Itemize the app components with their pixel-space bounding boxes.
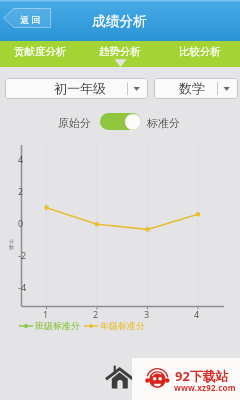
staticText: 4: [18, 153, 24, 165]
staticText: 2: [18, 185, 24, 197]
button[interactable]: 班级标准分: [19, 320, 80, 331]
staticText: 班级标准分: [35, 320, 80, 331]
staticText: 标准分: [147, 116, 180, 130]
staticText: 返 回: [20, 13, 41, 25]
staticText: 数: [9, 244, 14, 250]
staticText: 3: [144, 308, 150, 320]
button[interactable]: 初一年级: [5, 78, 148, 99]
button[interactable]: 贡献度分析: [0, 41, 80, 67]
staticText: 初一年级: [54, 80, 106, 96]
staticText: -4: [18, 281, 27, 293]
staticText: 原始分: [58, 116, 91, 130]
staticText: www.xz92.com: [174, 382, 236, 393]
button[interactable]: 原始分 标准分 切换: [100, 113, 141, 130]
staticText: 比较分析: [179, 45, 221, 58]
staticText: 数学: [179, 80, 205, 96]
button[interactable]: 年级标准分: [84, 320, 145, 331]
staticText: 4: [194, 308, 200, 320]
staticText: 成绩分析: [92, 13, 147, 30]
staticText: 年级标准分: [100, 320, 145, 331]
staticText: 1: [43, 308, 49, 320]
staticText: 92下载站: [175, 367, 229, 385]
button[interactable]: 趋势分析: [80, 41, 160, 67]
button[interactable]: 主页: [106, 365, 131, 390]
button[interactable]: 比较分析: [160, 41, 240, 67]
staticText: 0: [18, 217, 24, 229]
staticText: 趋势分析: [99, 45, 141, 58]
button[interactable]: 返回: [3, 8, 51, 28]
staticText: 2: [93, 308, 99, 320]
staticText: -2: [18, 249, 27, 261]
button[interactable]: 数学: [154, 78, 238, 99]
staticText: 分: [9, 238, 14, 244]
staticText: 贡献度分析: [14, 45, 67, 58]
